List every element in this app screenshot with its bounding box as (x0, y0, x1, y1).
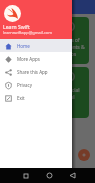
staticText: Swift (20, 44, 32, 51)
staticText: Oriented (16, 94, 37, 101)
staticText: Basics of (59, 37, 80, 44)
staticText: Language (14, 51, 38, 58)
staticText: Share this App (17, 69, 48, 75)
button[interactable]: Home (44, 170, 55, 181)
button[interactable]: Add (78, 149, 90, 161)
staticText: Object (18, 87, 34, 94)
button[interactable]: Recents (20, 170, 31, 181)
staticText: Loops (62, 51, 77, 58)
staticText: Statements & (53, 44, 85, 51)
button[interactable]: Share this App (0, 65, 72, 78)
button[interactable]: Intro to (6, 17, 46, 64)
staticText: More Apps (17, 56, 40, 62)
staticText: Exit (17, 95, 25, 101)
staticText: learnswiftapp@gmail.com (3, 30, 52, 35)
button[interactable]: Basics of (49, 17, 89, 64)
button[interactable]: More Apps (0, 52, 72, 65)
staticText: Intro to (17, 37, 35, 44)
button[interactable]: Home (0, 39, 72, 52)
staticText: Home (17, 43, 30, 49)
button[interactable]: Back (67, 170, 78, 181)
staticText: Learn Swift (3, 24, 30, 31)
button[interactable]: Privacy (0, 78, 72, 91)
button[interactable]: Exit (0, 91, 72, 104)
staticText: Deal (64, 94, 75, 101)
staticText: Privacy (17, 82, 33, 88)
button[interactable]: Financial (49, 67, 89, 118)
staticText: Financial (59, 87, 80, 94)
button[interactable]: Object (6, 67, 46, 118)
